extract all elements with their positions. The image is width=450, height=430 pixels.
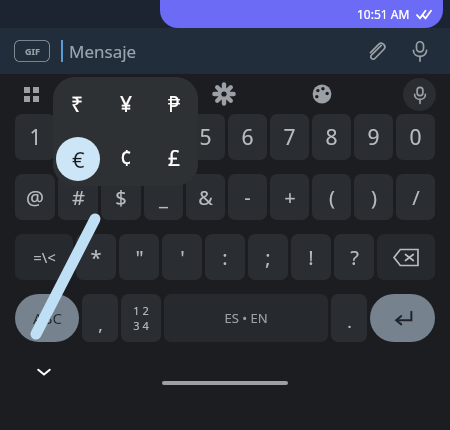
button[interactable]: £ — [150, 131, 198, 186]
button[interactable]: + — [270, 174, 309, 220]
staticText: : — [222, 244, 228, 271]
button[interactable]: @ — [15, 174, 55, 220]
staticText: / — [412, 184, 420, 211]
button[interactable]: * — [76, 234, 116, 280]
button[interactable]: ES • EN — [164, 294, 328, 342]
button[interactable]: 7 — [270, 114, 309, 160]
staticText: & — [198, 184, 213, 211]
button[interactable]: Backspace — [377, 234, 435, 280]
button[interactable]: Record voice message — [404, 35, 436, 67]
staticText: * — [90, 244, 102, 271]
button[interactable]: Enter — [370, 294, 435, 342]
staticText: 0 — [409, 123, 422, 152]
staticText: ' — [180, 244, 185, 271]
button[interactable]: Attach file — [360, 35, 392, 67]
button[interactable]: 0 — [396, 114, 435, 160]
button[interactable]: Themes — [305, 77, 339, 111]
staticText: $ — [115, 184, 127, 211]
staticText: + — [284, 184, 296, 211]
staticText: _ — [159, 184, 168, 211]
button[interactable]: ? — [334, 234, 374, 280]
staticText: ¥ — [120, 90, 133, 119]
button[interactable]: 1 — [15, 114, 55, 160]
button[interactable]: GIF — [14, 40, 50, 62]
button[interactable]: ¥ — [102, 77, 150, 131]
button[interactable]: 1 2 — [121, 294, 161, 342]
staticText: 9 — [367, 123, 380, 152]
button[interactable]: 9 — [354, 114, 393, 160]
staticText: 5 — [199, 123, 212, 152]
button[interactable]: 5 — [186, 114, 225, 160]
button[interactable]: Voice typing — [403, 78, 436, 111]
button[interactable]: Expand toolbar — [16, 79, 46, 109]
staticText: ₱ — [168, 90, 181, 119]
button[interactable]: ' — [162, 234, 202, 280]
button[interactable]: ABC — [15, 294, 79, 342]
button[interactable]: - — [228, 174, 267, 220]
button[interactable]: Clipboard — [109, 77, 143, 111]
staticText: . — [347, 310, 352, 333]
button[interactable]: , — [82, 294, 118, 342]
button[interactable]: 3 — [101, 114, 141, 160]
staticText: , — [98, 313, 103, 336]
button[interactable]: / — [396, 174, 435, 220]
button[interactable]: ( — [312, 174, 351, 220]
button[interactable]: € — [53, 131, 102, 186]
staticText: 3 4 — [133, 318, 149, 333]
staticText: ) — [371, 184, 377, 211]
staticText: " — [135, 244, 144, 271]
staticText: 8 — [325, 123, 338, 152]
staticText: ABC — [33, 308, 62, 328]
staticText: 2 — [72, 123, 85, 152]
button[interactable]: $ — [101, 174, 141, 220]
button[interactable]: 6 — [228, 114, 267, 160]
staticText: € — [72, 144, 85, 174]
staticText: ( — [329, 184, 335, 211]
staticText: 10:51 AM — [357, 6, 410, 22]
button[interactable]: . — [331, 294, 367, 342]
staticText: =\< — [33, 247, 56, 267]
button[interactable]: " — [119, 234, 159, 280]
button[interactable]: =\< — [15, 234, 73, 280]
staticText: - — [244, 184, 251, 211]
button[interactable]: ! — [291, 234, 331, 280]
staticText: ¢ — [120, 144, 133, 173]
staticText: 1 — [29, 123, 42, 152]
button[interactable]: ₱ — [150, 77, 198, 131]
staticText: # — [72, 184, 85, 211]
staticText: 7 — [283, 123, 296, 152]
button[interactable]: & — [186, 174, 225, 220]
button[interactable]: _ — [144, 174, 183, 220]
staticText: GIF — [25, 45, 40, 57]
staticText: 6 — [241, 123, 254, 152]
button[interactable]: ₹ — [53, 77, 102, 131]
button[interactable]: # — [58, 174, 98, 220]
button[interactable]: Hide keyboard — [32, 360, 56, 384]
button[interactable]: ) — [354, 174, 393, 220]
staticText: ₹ — [71, 90, 84, 119]
staticText: Mensaje — [69, 40, 137, 63]
button[interactable]: 4 — [144, 114, 183, 160]
staticText: @ — [26, 184, 44, 211]
staticText: 1 2 — [133, 303, 149, 318]
button[interactable]: : — [205, 234, 245, 280]
staticText: £ — [168, 144, 181, 173]
staticText: ? — [350, 244, 359, 271]
button[interactable]: ; — [248, 234, 288, 280]
button[interactable]: 2 — [58, 114, 98, 160]
staticText: ; — [265, 244, 271, 271]
button[interactable]: Settings — [207, 77, 241, 111]
button[interactable]: ¢ — [102, 131, 150, 186]
staticText: ES • EN — [224, 309, 268, 327]
staticText: ! — [308, 244, 314, 271]
staticText: 3 — [115, 123, 128, 152]
button[interactable]: 8 — [312, 114, 351, 160]
